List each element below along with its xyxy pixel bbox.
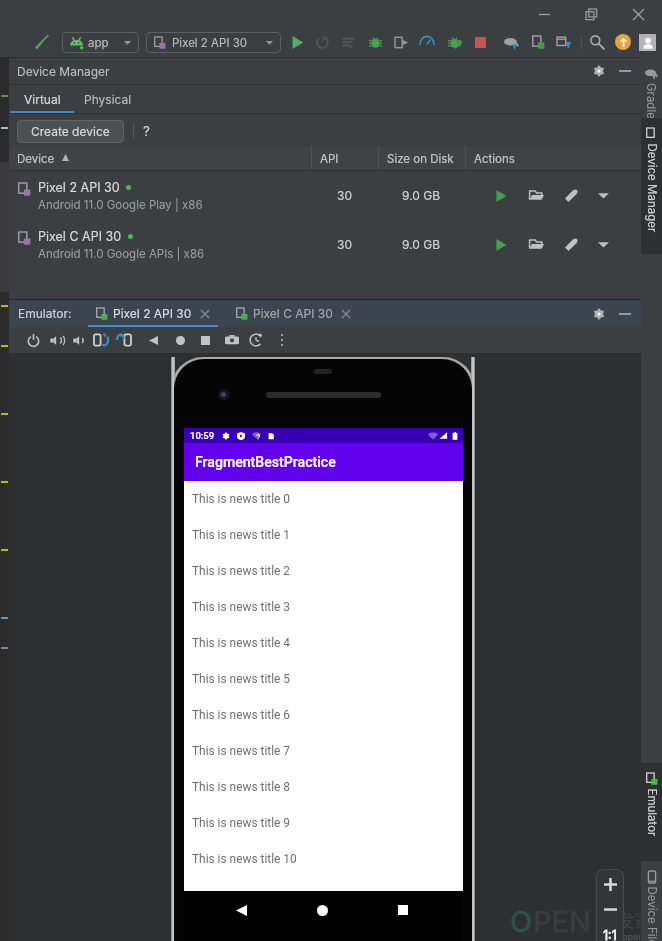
button[interactable]: Build	[31, 31, 54, 54]
button[interactable]: Pixel C API 30	[9, 220, 641, 269]
button[interactable]: Sync Project with Gradle Files	[500, 31, 522, 53]
button[interactable]: Minimize	[521, 0, 568, 28]
button[interactable]: Volume up	[44, 329, 66, 351]
button[interactable]: Attach debugger	[390, 31, 412, 53]
button[interactable]: Hide	[614, 60, 636, 82]
button[interactable]: This is news title 2	[184, 553, 463, 589]
button[interactable]: More	[592, 184, 615, 207]
staticText: 30	[337, 237, 352, 252]
staticText: Emulator:	[18, 306, 72, 321]
button[interactable]: Create device	[17, 120, 124, 143]
staticText: Emulator	[644, 788, 658, 836]
staticText: O	[510, 904, 533, 939]
button[interactable]: This is news title 5	[184, 661, 463, 697]
button[interactable]: Pixel 2 API 30	[146, 32, 281, 53]
button[interactable]: Volume down	[67, 329, 89, 351]
button[interactable]: Restore	[568, 0, 615, 28]
button[interactable]: This is news title 0	[184, 481, 463, 517]
button[interactable]: Close tab	[339, 307, 352, 320]
button[interactable]: Screenshot	[221, 329, 243, 351]
button[interactable]: API	[312, 146, 378, 171]
button[interactable]: Recents	[389, 896, 417, 924]
staticText: FragmentBestPractice	[195, 454, 336, 471]
button[interactable]: Settings	[588, 60, 610, 82]
button[interactable]: Rotate left	[90, 329, 112, 351]
button[interactable]: This is news title 10	[184, 841, 463, 877]
staticText: This is news title 9	[192, 816, 290, 830]
staticText: Gradle	[644, 83, 658, 118]
button[interactable]: This is news title 3	[184, 589, 463, 625]
button[interactable]: Search	[586, 31, 608, 53]
staticText: Size on Disk	[387, 152, 454, 166]
button[interactable]: SDK Manager	[553, 31, 575, 53]
button[interactable]: Show files	[525, 233, 548, 256]
button[interactable]: Size on Disk	[379, 146, 465, 171]
button[interactable]: This is news title 1	[184, 517, 463, 553]
button[interactable]: Home	[169, 329, 191, 351]
button[interactable]: History	[245, 329, 267, 351]
button[interactable]: Updates	[612, 31, 634, 53]
button[interactable]: Pixel 2 API 30	[9, 171, 641, 220]
button[interactable]: Close	[615, 0, 662, 28]
button[interactable]: Pixel C API 30	[228, 300, 358, 327]
button[interactable]: Back	[142, 329, 164, 351]
button[interactable]: Edit	[560, 184, 583, 207]
staticText: Device Manager	[17, 64, 110, 79]
staticText: Actions	[474, 152, 515, 166]
button[interactable]: Overview	[194, 329, 216, 351]
button[interactable]: This is news title 8	[184, 769, 463, 805]
button[interactable]: AVD Manager	[527, 31, 549, 53]
staticText: This is news title 1	[192, 528, 290, 542]
button[interactable]: Debug	[364, 31, 386, 53]
staticText: Device File	[644, 886, 658, 941]
button[interactable]: Home	[308, 896, 336, 924]
staticText: app	[88, 36, 109, 50]
button[interactable]: Profiler	[416, 31, 438, 53]
button[interactable]: Physical	[77, 85, 139, 113]
button[interactable]: Apply Changes	[311, 31, 333, 53]
button[interactable]: 1:1	[597, 924, 623, 941]
button[interactable]: Hide	[614, 303, 636, 325]
button[interactable]: This is news title 6	[184, 697, 463, 733]
button[interactable]: Actions	[466, 146, 636, 171]
staticText: API	[320, 152, 339, 166]
button[interactable]: Zoom in	[598, 872, 622, 896]
staticText: Pixel C API 30	[253, 306, 333, 321]
button[interactable]: Stop	[469, 31, 491, 53]
button[interactable]: Back	[227, 896, 255, 924]
button[interactable]: Show files	[525, 184, 548, 207]
button[interactable]: Launch	[489, 233, 512, 256]
button[interactable]: Zoom out	[598, 897, 622, 921]
button[interactable]: Account	[636, 31, 658, 53]
button[interactable]: Device Manager	[641, 118, 662, 254]
button[interactable]: This is news title 7	[184, 733, 463, 769]
button[interactable]: Emulator	[641, 763, 662, 861]
staticText: This is news title 2	[192, 564, 290, 578]
staticText: Device Manager	[644, 143, 658, 232]
staticText: This is news title 5	[192, 672, 290, 686]
staticText: Physical	[84, 92, 132, 107]
button[interactable]: Edit	[560, 233, 583, 256]
button[interactable]: Pixel 2 API 30	[88, 300, 218, 327]
button[interactable]: Apply Code Changes	[337, 31, 359, 53]
button[interactable]: Profile app	[443, 31, 465, 53]
button[interactable]: Launch	[489, 184, 512, 207]
staticText: This is news title 7	[192, 744, 290, 758]
button[interactable]: Close tab	[198, 307, 211, 320]
staticText: ?	[143, 123, 150, 139]
button[interactable]: Device File	[641, 861, 662, 941]
button[interactable]: More	[271, 329, 293, 351]
button[interactable]: Device	[9, 146, 311, 171]
button[interactable]: Gradle	[641, 57, 662, 118]
button[interactable]: More	[592, 233, 615, 256]
button[interactable]: Virtual	[10, 85, 74, 113]
button[interactable]: Run	[286, 31, 308, 53]
staticText: This is news title 0	[192, 492, 290, 506]
button[interactable]: This is news title 9	[184, 805, 463, 841]
button[interactable]: Help	[135, 120, 157, 142]
button[interactable]: This is news title 4	[184, 625, 463, 661]
button[interactable]: Settings	[588, 303, 610, 325]
button[interactable]: Rotate right	[113, 329, 135, 351]
button[interactable]: app	[62, 32, 139, 53]
button[interactable]: Power	[22, 329, 44, 351]
